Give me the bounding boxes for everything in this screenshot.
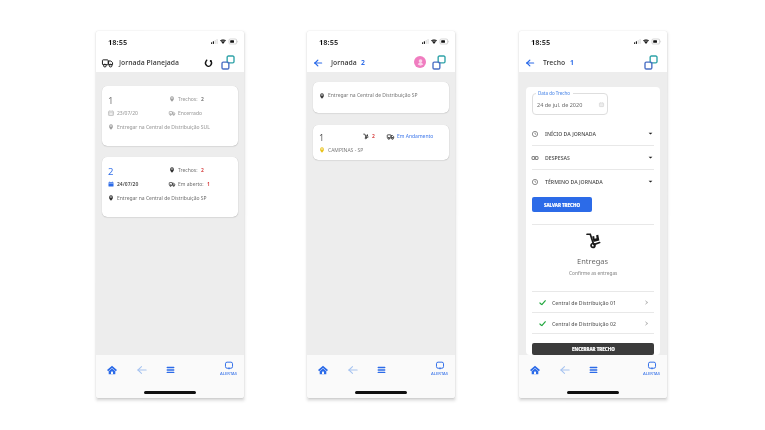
staticText: 1 <box>108 94 114 104</box>
button[interactable]: Menu <box>156 355 185 384</box>
button[interactable]: Menu <box>367 355 396 384</box>
button[interactable]: 1 <box>313 125 449 160</box>
button[interactable]: INÍCIO DA JORNADA <box>532 122 654 145</box>
staticText: Central de Distribuição 01 <box>552 299 616 306</box>
button[interactable]: SALVAR TRECHO <box>532 197 592 212</box>
button[interactable]: ALERTAS <box>425 355 454 384</box>
button[interactable]: ENCERRAR TRECHO <box>532 343 654 355</box>
button[interactable]: Voltar <box>523 56 536 69</box>
staticText: TÉRMINO DA JORNADA <box>545 178 603 185</box>
staticText: Trechos: <box>178 167 198 174</box>
staticText: 18:55 <box>319 37 339 47</box>
button[interactable]: Início <box>307 355 338 384</box>
staticText: Entregar na Central de Distribuição SP <box>117 195 207 202</box>
staticText: 2 <box>201 96 204 103</box>
staticText: Data do Trecho <box>538 90 571 96</box>
staticText: ENCERRAR TRECHO <box>572 346 615 352</box>
staticText: 2 <box>361 58 365 67</box>
staticText: Trecho <box>543 58 566 67</box>
button[interactable]: TÉRMINO DA JORNADA <box>532 170 654 193</box>
staticText: Entregar na Central de Distribuição SUL <box>117 124 210 131</box>
staticText: 24/07/20 <box>117 181 139 188</box>
staticText: Entregas <box>577 256 609 266</box>
button[interactable]: Voltar <box>338 355 367 384</box>
staticText: SALVAR TRECHO <box>544 202 580 208</box>
staticText: Jornada <box>331 58 357 67</box>
button[interactable]: Início <box>96 355 127 384</box>
button[interactable]: Entregar na Central de Distribuição SP <box>313 82 449 113</box>
button[interactable]: 2 <box>102 157 238 217</box>
button[interactable]: Logo <box>220 53 239 71</box>
staticText: 24 de jul. de 2020 <box>537 101 583 108</box>
button[interactable]: Atualizar <box>202 56 215 69</box>
button[interactable]: Menu <box>579 355 608 384</box>
staticText: DESPESAS <box>545 154 570 161</box>
staticText: CAMPINAS - SP <box>328 147 364 154</box>
staticText: 1 <box>570 58 574 67</box>
button[interactable]: ALERTAS <box>214 355 243 384</box>
staticText: Central de Distribuição 02 <box>552 320 616 327</box>
button[interactable]: Voltar <box>550 355 579 384</box>
staticText: 18:55 <box>531 37 551 47</box>
staticText: 2 <box>108 165 114 175</box>
staticText: Trechos: <box>178 96 198 103</box>
staticText: 1 <box>207 181 210 188</box>
staticText: 23/07/20 <box>117 110 138 117</box>
button[interactable]: Voltar <box>311 56 324 69</box>
staticText: 1 <box>319 131 325 141</box>
staticText: 18:55 <box>108 37 128 47</box>
staticText: 2 <box>201 167 204 174</box>
button[interactable]: Central de Distribuição 01 <box>532 292 654 312</box>
staticText: Encerrado <box>178 110 203 117</box>
button[interactable]: 24 de jul. de 2020 <box>532 93 608 115</box>
staticText: Confirme as entregas <box>569 270 618 277</box>
staticText: ALERTAS <box>643 371 661 377</box>
button[interactable]: Central de Distribuição 02 <box>532 313 654 333</box>
button[interactable]: Voltar <box>127 355 156 384</box>
button[interactable]: Logo <box>643 53 662 71</box>
staticText: INÍCIO DA JORNADA <box>545 130 596 137</box>
button[interactable]: DESPESAS <box>532 146 654 169</box>
staticText: ALERTAS <box>220 371 238 377</box>
staticText: Em aberto: <box>178 181 204 188</box>
staticText: Em Andamento <box>397 133 434 140</box>
button[interactable]: ALERTAS <box>637 355 666 384</box>
staticText: ALERTAS <box>431 371 449 377</box>
staticText: Jornada Planejada <box>119 58 180 67</box>
staticText: 2 <box>372 133 375 140</box>
button[interactable]: Logo <box>431 53 450 71</box>
button[interactable]: 1 <box>102 86 238 146</box>
button[interactable]: Perfil <box>414 56 426 68</box>
staticText: Entregar na Central de Distribuição SP <box>328 92 418 99</box>
button[interactable]: Início <box>519 355 550 384</box>
